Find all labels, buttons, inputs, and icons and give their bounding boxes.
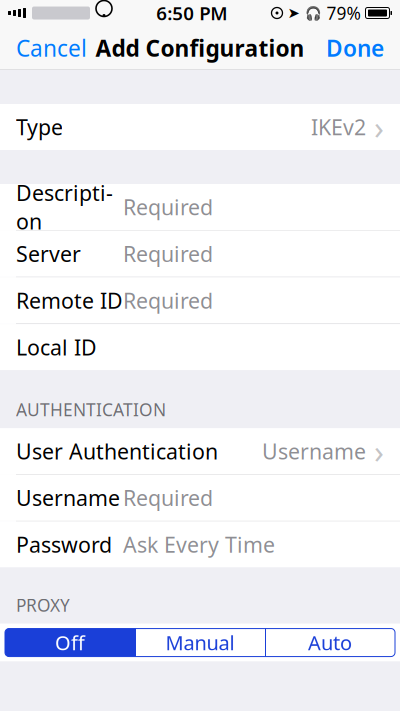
staticText: Required xyxy=(123,193,213,221)
button[interactable]: Done xyxy=(310,26,400,70)
staticText: Cancel xyxy=(16,33,87,63)
button[interactable]: Description xyxy=(0,184,400,230)
staticText: Done xyxy=(326,33,384,63)
staticText: Username xyxy=(16,484,120,512)
staticText: Manual xyxy=(165,629,234,656)
button[interactable]: User Authentication xyxy=(0,428,400,474)
button[interactable]: Auto xyxy=(265,628,395,656)
staticText: 79% xyxy=(326,1,360,24)
staticText: AUTHENTICATION xyxy=(16,398,166,421)
staticText: Local ID xyxy=(16,333,97,361)
staticText: PROXY xyxy=(16,593,70,616)
staticText: User Authentication xyxy=(16,437,218,465)
button[interactable]: Local ID xyxy=(0,324,400,370)
staticText: Add Configuration xyxy=(95,33,304,63)
staticText: Username xyxy=(262,437,366,465)
staticText: 6:50 PM xyxy=(156,1,227,25)
button[interactable]: Cancel xyxy=(0,26,103,70)
staticText: Ask Every Time xyxy=(123,530,275,559)
staticText: Type xyxy=(16,113,63,141)
staticText: Required xyxy=(123,286,213,314)
staticText: 🎧 xyxy=(304,5,321,21)
button[interactable]: Manual xyxy=(135,628,265,656)
button[interactable]: Password xyxy=(0,521,400,567)
button[interactable]: Off xyxy=(5,628,135,656)
staticText: Remote ID xyxy=(16,286,123,314)
staticText: › xyxy=(374,430,384,472)
button[interactable]: Remote ID xyxy=(0,277,400,323)
button[interactable]: Server xyxy=(0,231,400,277)
staticText: Required xyxy=(123,239,213,268)
staticText: › xyxy=(374,106,384,148)
button[interactable]: Username xyxy=(0,475,400,521)
staticText: ➤ xyxy=(287,5,299,21)
staticText: Required xyxy=(123,484,213,512)
staticText: IKEv2 xyxy=(311,113,366,141)
staticText: Auto xyxy=(308,629,352,656)
staticText: Off xyxy=(55,629,85,656)
button[interactable]: Type xyxy=(0,104,400,150)
staticText: Server xyxy=(16,239,81,268)
staticText: Password xyxy=(16,530,112,559)
staticText: Description xyxy=(16,179,113,235)
